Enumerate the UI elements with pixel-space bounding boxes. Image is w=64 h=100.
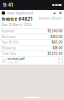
button[interactable]: Close: [58, 11, 62, 15]
staticText: −$120.00: [48, 35, 62, 39]
staticText: Subtotal: [2, 29, 15, 33]
staticText: +: [53, 10, 57, 16]
staticText: Due 12 March 2024: [2, 23, 32, 27]
staticText: ✕: [58, 10, 62, 16]
button[interactable]: Add: [53, 11, 57, 15]
staticText: receipt.pdf: [7, 57, 24, 61]
staticText: 248 KB: [7, 61, 18, 64]
button[interactable]: Contact Details: [38, 17, 62, 20]
staticText: Tax (8.5%): [2, 41, 19, 44]
staticText: Discount: [2, 35, 16, 39]
staticText: 9:41: [3, 2, 13, 8]
staticText: $1,233.20: [47, 52, 62, 55]
staticText: $18.00: [52, 46, 62, 50]
staticText: Invoice #4821: [2, 17, 33, 22]
staticText: $1,240.00: [47, 29, 62, 33]
staticText: Jane Appleseed: [7, 11, 33, 15]
staticText: Shipping: [2, 46, 16, 50]
staticText: Contact Details: [38, 17, 62, 20]
staticText: Total Due: [2, 52, 17, 55]
staticText: $95.20: [51, 41, 62, 44]
